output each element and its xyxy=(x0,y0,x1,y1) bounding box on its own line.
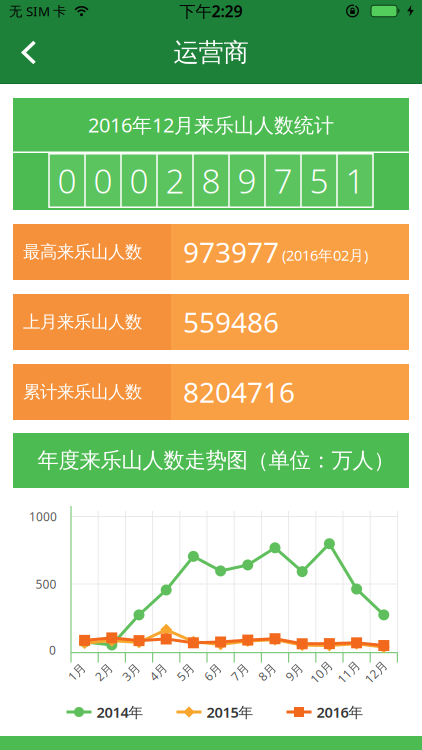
staticText: 8 xyxy=(201,158,220,203)
staticText: 0 xyxy=(93,158,112,203)
staticText: 9月 xyxy=(285,664,304,680)
staticText: 11月 xyxy=(336,664,362,680)
staticText: 7 xyxy=(273,158,292,203)
staticText: 0 xyxy=(129,158,148,203)
staticText: 5月 xyxy=(176,664,195,680)
staticText: 2 xyxy=(165,158,184,203)
button[interactable]: 2016年 xyxy=(286,702,363,722)
staticText: 7月 xyxy=(230,664,249,680)
staticText: 累计来乐山人数 xyxy=(23,381,142,403)
staticText: 无 SIM 卡 xyxy=(9,2,66,20)
staticText: 9 xyxy=(237,158,256,203)
button[interactable]: 2014年 xyxy=(66,702,143,722)
staticText: 12月 xyxy=(363,664,389,680)
staticText: 559486 xyxy=(183,303,279,341)
staticText: 973977 xyxy=(183,233,279,271)
staticText: 6月 xyxy=(203,664,222,680)
staticText: 3月 xyxy=(121,664,140,680)
staticText: 下午2:29 xyxy=(179,0,242,22)
button[interactable]: 2015年 xyxy=(176,702,253,722)
staticText: 2月 xyxy=(94,664,113,680)
staticText: 2016年12月来乐山人数统计 xyxy=(88,111,334,138)
staticText: 0 xyxy=(57,158,76,203)
staticText: 最高来乐山人数 xyxy=(23,241,142,263)
staticText: 1000 xyxy=(29,508,57,524)
staticText: 2014年 xyxy=(96,702,143,722)
staticText: 10月 xyxy=(308,664,334,680)
staticText: 2015年 xyxy=(206,702,253,722)
staticText: 0 xyxy=(49,642,56,658)
button[interactable]: Back xyxy=(10,34,46,70)
staticText: 年度来乐山人数走势图（单位：万人） xyxy=(37,447,394,474)
staticText: 1月 xyxy=(67,664,86,680)
staticText: 4月 xyxy=(149,664,168,680)
staticText: 上月来乐山人数 xyxy=(23,311,142,333)
staticText: 5 xyxy=(309,158,328,203)
staticText: 1 xyxy=(345,158,364,203)
staticText: 8月 xyxy=(257,664,276,680)
staticText: 500 xyxy=(35,576,56,592)
staticText: 运营商 xyxy=(173,37,248,68)
staticText: 8204716 xyxy=(183,373,295,411)
staticText: (2016年02月) xyxy=(282,245,368,265)
staticText: 2016年 xyxy=(316,702,363,722)
